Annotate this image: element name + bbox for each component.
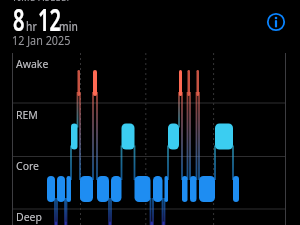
staticText: Awake — [16, 57, 49, 71]
staticText: 12 — [38, 0, 61, 40]
staticText: hr — [26, 18, 37, 34]
staticText: Deep — [16, 210, 42, 224]
staticText: min — [59, 18, 79, 34]
button[interactable] — [265, 11, 287, 33]
staticText: TIME ASLEEP — [12, 0, 73, 3]
staticText: Core — [16, 159, 40, 173]
staticText: 12 Jan 2025 — [12, 32, 70, 48]
staticText: 8 — [13, 0, 25, 40]
staticText: REM — [16, 108, 38, 122]
